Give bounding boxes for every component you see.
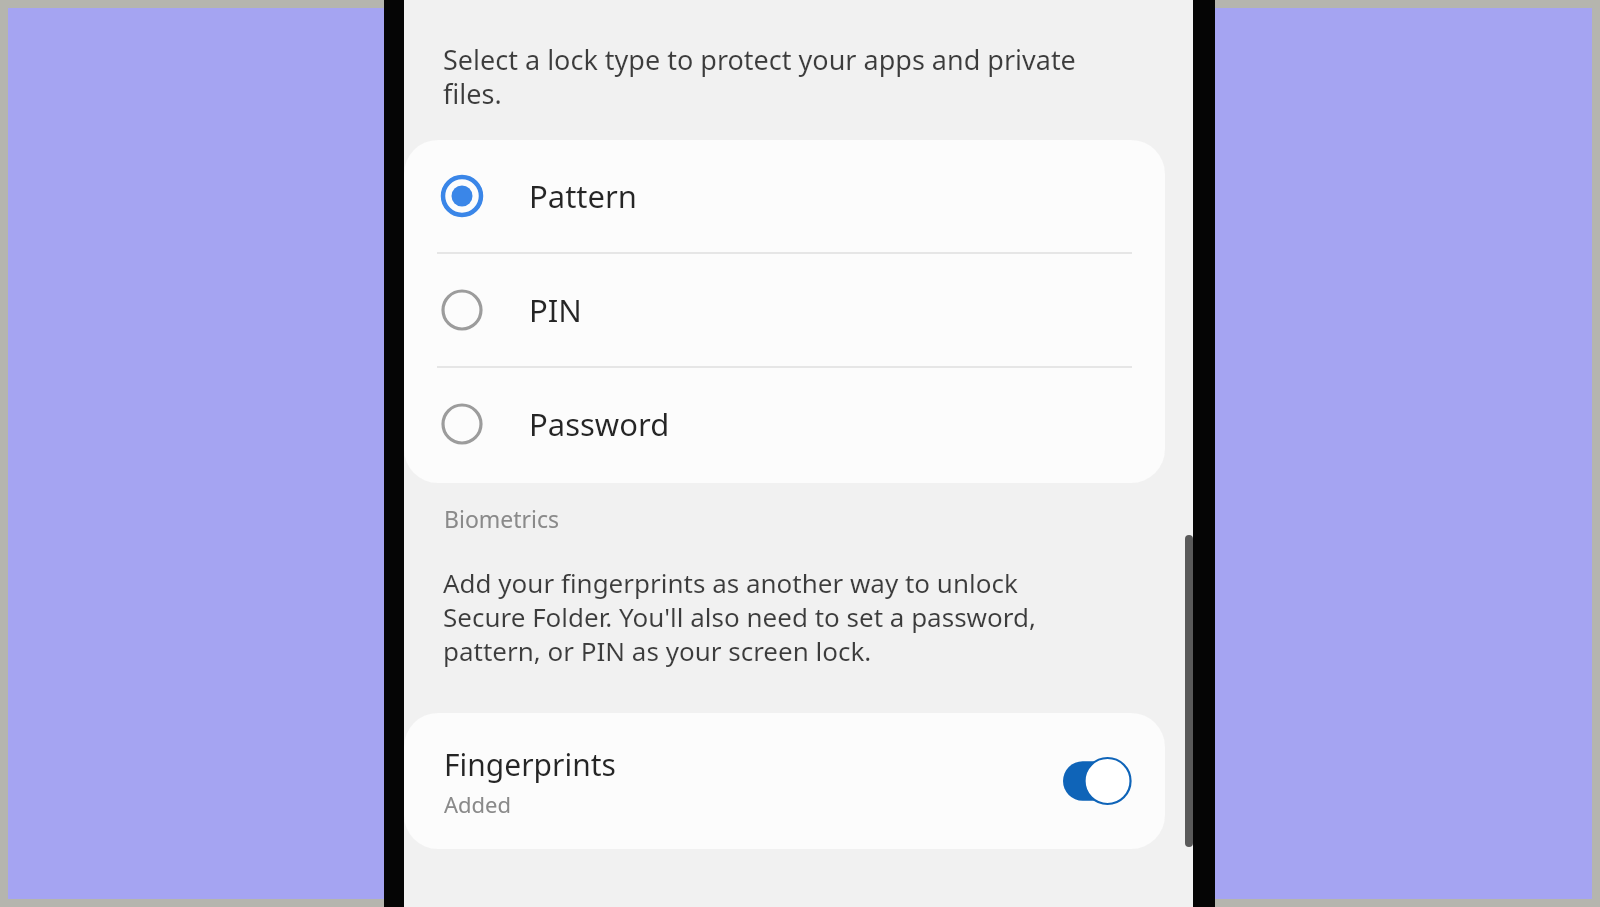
staticText: PIN <box>529 289 582 331</box>
staticText: Biometrics <box>444 503 560 534</box>
staticText: Pattern <box>529 175 637 217</box>
button[interactable]: Password <box>404 368 1165 480</box>
staticText: Select a lock type to protect your apps … <box>443 41 1093 112</box>
staticText: Password <box>529 403 670 445</box>
button[interactable]: PIN <box>404 254 1165 366</box>
button[interactable]: Pattern <box>404 140 1165 252</box>
button[interactable]: Fingerprints toggle, on <box>1063 757 1133 805</box>
staticText: Fingerprints <box>444 744 616 785</box>
staticText: Added <box>444 789 512 819</box>
staticText: Add your fingerprints as another way to … <box>443 565 1083 668</box>
button[interactable]: Fingerprints <box>404 713 1165 849</box>
